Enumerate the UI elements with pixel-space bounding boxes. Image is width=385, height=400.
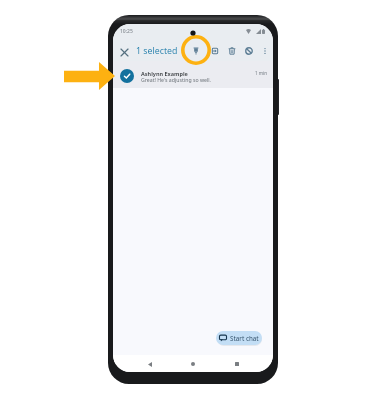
button[interactable]: Pin <box>189 44 203 58</box>
button[interactable]: Start chat <box>216 331 262 345</box>
button[interactable]: Recents <box>230 357 244 371</box>
button[interactable]: Home <box>186 357 200 371</box>
staticText: 1 selected <box>136 45 178 57</box>
button[interactable]: Delete <box>225 44 239 58</box>
staticText: Ashlynn Example <box>141 70 188 77</box>
button[interactable]: Ashlynn Example <box>113 61 273 88</box>
staticText: 1 min <box>255 70 268 76</box>
staticText: 10:25 <box>120 28 133 35</box>
button[interactable]: More options <box>258 44 272 58</box>
button[interactable]: Close selection <box>117 45 131 59</box>
button[interactable]: Block <box>242 44 256 58</box>
button[interactable]: Archive <box>208 44 222 58</box>
button[interactable]: Back <box>143 357 157 371</box>
staticText: Great! He's adjusting so well. <box>141 76 211 83</box>
staticText: Start chat <box>230 334 259 342</box>
